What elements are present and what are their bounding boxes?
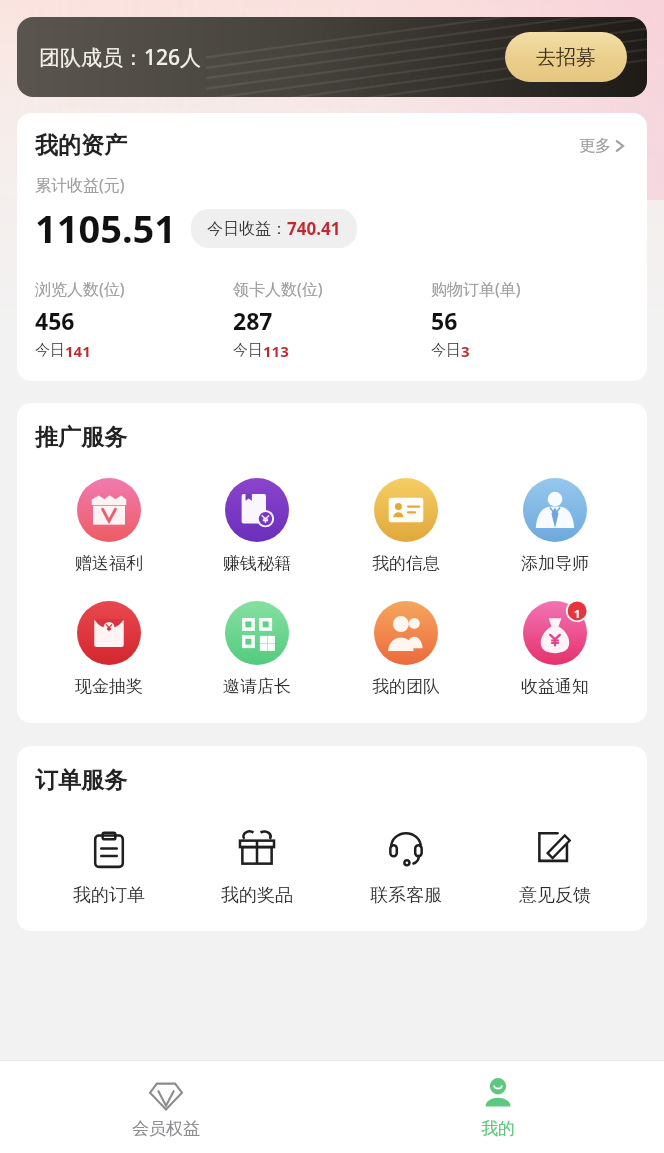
staticText: 去招募: [536, 45, 596, 70]
staticText: 今日收益：: [207, 219, 287, 239]
button[interactable]: 会员权益: [0, 1061, 332, 1153]
staticText: 订单服务: [35, 766, 127, 795]
button[interactable]: 更多: [575, 132, 629, 160]
staticText: 邀请店长: [223, 676, 291, 697]
staticText: 今日: [431, 341, 461, 360]
button[interactable]: 去招募: [505, 32, 627, 82]
button[interactable]: 我的订单: [35, 825, 183, 907]
staticText: 意见反馈: [519, 884, 591, 907]
button[interactable]: 现金抽奖: [35, 601, 183, 697]
staticText: 添加导师: [521, 553, 589, 574]
button[interactable]: 赚钱秘籍: [183, 478, 331, 574]
staticText: 赠送福利: [75, 553, 143, 574]
staticText: 我的资产: [35, 131, 127, 160]
button[interactable]: 添加导师: [480, 478, 629, 574]
staticText: 更多: [579, 136, 611, 156]
staticText: 现金抽奖: [75, 676, 143, 697]
staticText: 赚钱秘籍: [223, 553, 291, 574]
staticText: 我的团队: [372, 676, 440, 697]
staticText: 今日: [35, 341, 65, 360]
staticText: 今日: [233, 341, 263, 360]
button[interactable]: 赠送福利: [35, 478, 183, 574]
staticText: 1105.51: [35, 202, 177, 254]
staticText: 团队成员：126人: [39, 43, 202, 72]
staticText: 740.41: [287, 217, 341, 240]
staticText: 我的订单: [73, 884, 145, 907]
button[interactable]: 意见反馈: [480, 825, 629, 907]
button[interactable]: 我的团队: [331, 601, 480, 697]
staticText: 56: [431, 305, 458, 336]
staticText: 领卡人数(位): [233, 278, 323, 300]
staticText: 购物订单(单): [431, 278, 521, 300]
staticText: 113: [263, 341, 289, 361]
staticText: 我的: [481, 1118, 515, 1139]
staticText: 联系客服: [370, 884, 442, 907]
button[interactable]: 团队成员：126人: [17, 17, 647, 97]
staticText: 我的信息: [372, 553, 440, 574]
button[interactable]: 邀请店长: [183, 601, 331, 697]
staticText: 累计收益(元): [35, 174, 125, 196]
button[interactable]: 1: [480, 601, 629, 697]
staticText: 我的奖品: [221, 884, 293, 907]
button[interactable]: 我的信息: [331, 478, 480, 574]
staticText: 287: [233, 305, 273, 336]
staticText: 浏览人数(位): [35, 278, 125, 300]
button[interactable]: 联系客服: [331, 825, 480, 907]
staticText: 1: [574, 606, 581, 621]
staticText: 3: [461, 341, 470, 361]
staticText: 456: [35, 305, 75, 336]
staticText: 141: [65, 341, 91, 361]
staticText: 会员权益: [132, 1118, 200, 1139]
button[interactable]: 我的奖品: [183, 825, 331, 907]
staticText: 收益通知: [521, 676, 589, 697]
button[interactable]: 我的: [332, 1061, 664, 1153]
staticText: 推广服务: [35, 423, 127, 452]
